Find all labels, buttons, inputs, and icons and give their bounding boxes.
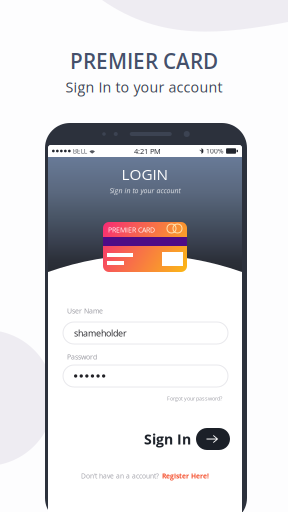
- staticText: Sign in to your account: [109, 186, 180, 195]
- staticText: Forgot your password?: [167, 395, 222, 402]
- staticText: BELL: [73, 146, 87, 156]
- button[interactable]: Sign In: [142, 426, 230, 452]
- staticText: 4:21 PM: [134, 146, 161, 156]
- staticText: 100%: [206, 146, 224, 156]
- button[interactable]: Forgot your password?: [63, 394, 222, 403]
- button[interactable]: shameholder: [63, 322, 228, 344]
- staticText: User Name: [67, 306, 103, 315]
- staticText: Sign In to your account: [65, 77, 222, 97]
- staticText: LOGIN: [121, 164, 168, 184]
- staticText: PREMIER CARD: [70, 47, 218, 75]
- staticText: PREMIER CARD: [108, 225, 155, 234]
- staticText: Sign In: [144, 429, 191, 449]
- button[interactable]: Don't have an a account?: [48, 470, 242, 482]
- staticText: Register Here!: [162, 471, 209, 481]
- staticText: shameholder: [74, 327, 127, 339]
- staticText: Don't have an a account?: [81, 471, 159, 481]
- staticText: Password: [67, 352, 97, 361]
- button[interactable]: [63, 365, 228, 387]
